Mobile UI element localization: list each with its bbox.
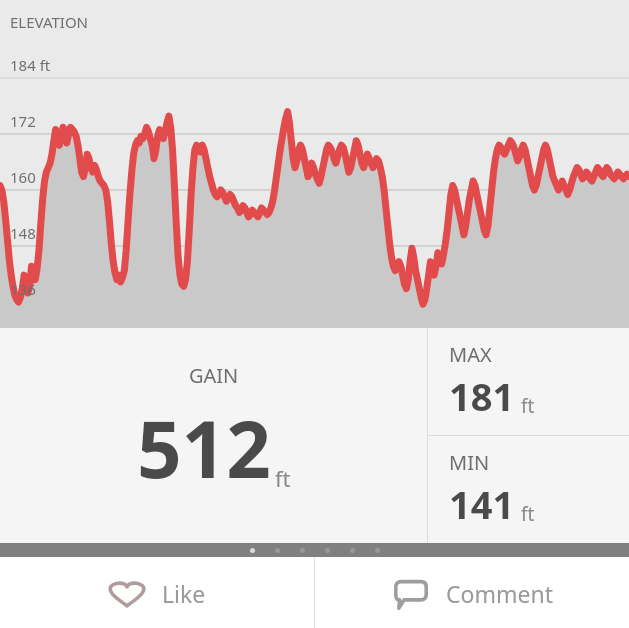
staticText: Like <box>162 578 206 609</box>
staticText: Comment <box>446 578 553 609</box>
button[interactable]: GAIN <box>0 328 427 543</box>
staticText: 172 <box>10 111 36 131</box>
button[interactable]: Like <box>0 557 314 628</box>
staticText: GAIN <box>189 362 239 389</box>
staticText: ft <box>521 393 535 419</box>
staticText: ft <box>275 463 291 493</box>
staticText: 136 <box>10 279 36 299</box>
staticText: 141 <box>449 478 515 530</box>
staticText: 512 <box>137 395 271 501</box>
staticText: MIN <box>449 449 490 476</box>
staticText: MAX <box>449 341 492 368</box>
staticText: ELEVATION <box>10 12 89 32</box>
button[interactable]: MIN <box>428 436 629 543</box>
staticText: 160 <box>10 167 36 187</box>
button[interactable]: Comment <box>315 557 629 628</box>
staticText: 181 <box>449 370 515 422</box>
staticText: ft <box>521 501 535 527</box>
button[interactable]: MAX <box>428 328 629 435</box>
staticText: 148 <box>10 223 36 243</box>
staticText: 184 ft <box>10 55 51 75</box>
